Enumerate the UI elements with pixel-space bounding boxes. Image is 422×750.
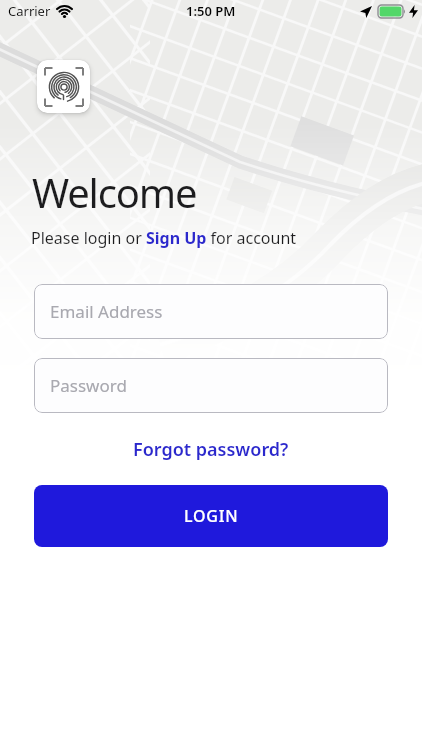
button[interactable]: Email Address xyxy=(34,284,388,339)
staticText: Carrier xyxy=(8,2,51,20)
button[interactable]: LOGIN xyxy=(34,485,388,547)
button[interactable]: Please login or Sign Up for account xyxy=(31,227,297,249)
staticText: Email Address xyxy=(50,300,163,323)
button[interactable]: Password xyxy=(34,358,388,413)
button[interactable]: Forgot password? xyxy=(133,437,289,462)
staticText: 1:50 PM xyxy=(186,2,236,20)
staticText: LOGIN xyxy=(184,505,239,527)
button[interactable] xyxy=(37,60,90,113)
staticText: Password xyxy=(50,374,127,397)
staticText: Welcome xyxy=(32,165,197,219)
